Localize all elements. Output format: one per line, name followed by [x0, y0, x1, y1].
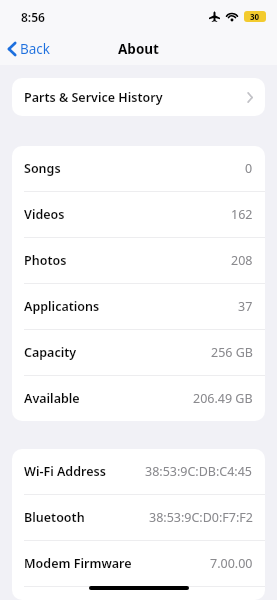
staticText: Applications [24, 298, 100, 315]
staticText: 162 [231, 206, 253, 223]
staticText: 208 [231, 252, 253, 269]
button[interactable]: Wi-Fi Address [12, 449, 265, 494]
staticText: 38:53:9C:DB:C4:45 [145, 463, 253, 480]
staticText: 256 GB [211, 344, 253, 361]
staticText: Back [20, 40, 51, 58]
staticText: Videos [24, 206, 65, 223]
button[interactable]: Parts & Service History [12, 78, 265, 116]
staticText: Songs [24, 160, 61, 177]
other: Battery 30 percent, Low Power Mode [244, 11, 266, 22]
staticText: Photos [24, 252, 67, 269]
other: Airplane mode on [209, 11, 220, 22]
staticText: 38:53:9C:D0:F7:F2 [149, 509, 253, 526]
button[interactable]: Back [0, 35, 61, 63]
staticText: 37 [238, 298, 253, 315]
button[interactable]: Bluetooth [12, 495, 265, 540]
staticText: 0 [245, 160, 253, 177]
button[interactable]: Modem Firmware [12, 541, 265, 586]
staticText: Available [24, 390, 80, 407]
other: Wi-Fi [226, 12, 238, 21]
staticText: 206.49 GB [193, 390, 253, 407]
staticText: Bluetooth [24, 509, 85, 526]
staticText: Parts & Service History [24, 89, 163, 106]
button[interactable]: Capacity [12, 330, 265, 375]
staticText: 7.00.00 [210, 555, 253, 572]
button[interactable]: Videos [12, 192, 265, 237]
button[interactable]: Available [12, 376, 265, 421]
staticText: 8:56 [21, 9, 45, 25]
button[interactable]: Photos [12, 238, 265, 283]
button[interactable]: Applications [12, 284, 265, 329]
staticText: About [118, 40, 159, 58]
staticText: Modem Firmware [24, 555, 132, 572]
button[interactable]: Songs [12, 146, 265, 191]
staticText: 30 [250, 11, 260, 22]
staticText: Capacity [24, 344, 77, 361]
staticText: Wi-Fi Address [24, 463, 106, 480]
